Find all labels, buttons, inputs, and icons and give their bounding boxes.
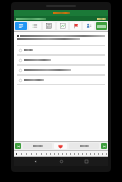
button[interactable]	[68, 151, 72, 156]
button[interactable]: Chart	[57, 22, 68, 30]
button[interactable]	[14, 151, 19, 156]
button[interactable]: Recent apps	[82, 157, 91, 166]
button[interactable]	[17, 76, 105, 84]
button[interactable]: Overview	[15, 22, 27, 30]
button[interactable]	[72, 151, 76, 156]
button[interactable]: Back	[31, 157, 40, 166]
button[interactable]	[44, 151, 48, 156]
button[interactable]: Account	[83, 22, 94, 30]
button[interactable]	[23, 143, 52, 149]
button[interactable]: Home	[57, 157, 66, 166]
button[interactable]: Flag	[70, 22, 81, 30]
button[interactable]	[24, 151, 29, 156]
button[interactable]	[39, 151, 44, 156]
button[interactable]	[100, 151, 104, 156]
button[interactable]: Calculator	[43, 22, 55, 30]
button[interactable]	[69, 143, 99, 149]
button[interactable]: First question	[15, 143, 21, 149]
button[interactable]: Last question	[101, 143, 107, 149]
button[interactable]: List	[29, 22, 41, 30]
button[interactable]	[76, 151, 80, 156]
button[interactable]	[17, 56, 105, 64]
button[interactable]	[92, 151, 96, 156]
button[interactable]	[29, 151, 34, 156]
button[interactable]: Submit	[96, 22, 107, 30]
button[interactable]	[80, 151, 84, 156]
button[interactable]	[56, 151, 60, 156]
button[interactable]	[88, 151, 92, 156]
button[interactable]	[48, 151, 52, 156]
button[interactable]	[64, 151, 68, 156]
button[interactable]	[17, 66, 105, 74]
button[interactable]	[60, 151, 64, 156]
button[interactable]	[52, 151, 56, 156]
button[interactable]	[34, 151, 39, 156]
button[interactable]	[96, 151, 100, 156]
button[interactable]	[19, 151, 24, 156]
button[interactable]	[84, 151, 88, 156]
button[interactable]	[104, 151, 108, 156]
button[interactable]	[17, 46, 105, 54]
button[interactable]: Flag question	[54, 143, 67, 149]
